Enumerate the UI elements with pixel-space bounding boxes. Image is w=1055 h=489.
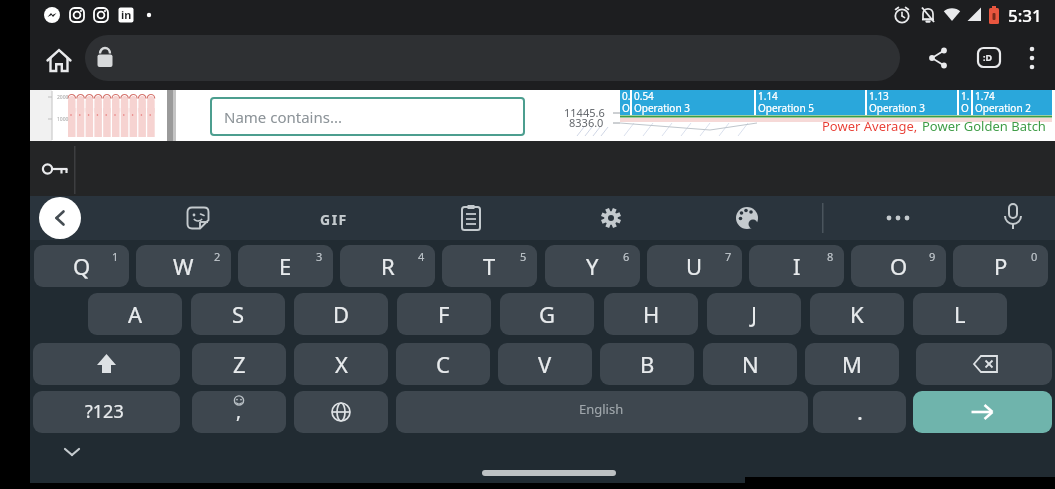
staticText: 8336.0: [569, 115, 604, 130]
staticText: 0.54: [634, 89, 654, 103]
button[interactable]: [1024, 44, 1040, 72]
staticText: Power Average,: [822, 117, 918, 135]
staticText: 5: [520, 249, 527, 264]
button[interactable]: M: [805, 343, 899, 385]
staticText: F: [438, 299, 450, 329]
button[interactable]: Q: [34, 245, 129, 287]
staticText: GIF: [320, 210, 348, 229]
button[interactable]: B: [600, 343, 694, 385]
button[interactable]: Name contains...: [210, 97, 525, 136]
staticText: 8: [827, 249, 834, 264]
staticText: P: [994, 251, 1008, 281]
button[interactable]: U: [647, 245, 742, 287]
staticText: Operation 3: [634, 101, 690, 115]
staticText: X: [335, 349, 348, 379]
button[interactable]: A: [88, 293, 182, 335]
staticText: O: [890, 251, 908, 281]
staticText: ?123: [85, 399, 124, 424]
button[interactable]: Z: [192, 343, 286, 385]
staticText: T: [483, 251, 496, 281]
staticText: H: [643, 299, 660, 329]
staticText: O: [622, 101, 630, 115]
staticText: G: [539, 299, 556, 329]
button[interactable]: [926, 46, 950, 70]
button[interactable]: [458, 204, 484, 232]
button[interactable]: [41, 156, 71, 184]
staticText: Z: [233, 349, 246, 379]
button[interactable]: R: [340, 245, 435, 287]
staticText: 1.: [961, 89, 970, 103]
staticText: 4: [418, 249, 425, 264]
staticText: V: [538, 349, 552, 379]
staticText: Q: [73, 251, 91, 281]
staticText: 1.14: [758, 89, 778, 103]
staticText: Y: [586, 251, 599, 281]
button[interactable]: [33, 391, 180, 433]
button[interactable]: X: [294, 343, 388, 385]
button[interactable]: [598, 205, 624, 231]
button[interactable]: [1001, 202, 1025, 234]
button[interactable]: T: [442, 245, 537, 287]
button[interactable]: N: [703, 343, 797, 385]
button[interactable]: [396, 391, 808, 433]
staticText: E: [279, 251, 292, 281]
button[interactable]: [85, 35, 900, 81]
button[interactable]: [62, 444, 82, 460]
button[interactable]: F: [397, 293, 491, 335]
staticText: 5:31: [1008, 4, 1042, 27]
button[interactable]: [192, 391, 286, 433]
staticText: 9: [929, 249, 936, 264]
staticText: N: [742, 349, 759, 379]
button[interactable]: [916, 343, 1052, 385]
staticText: Operation 3: [869, 101, 925, 115]
button[interactable]: [733, 204, 761, 232]
button[interactable]: [33, 343, 180, 385]
button[interactable]: Y: [545, 245, 640, 287]
button[interactable]: D: [294, 293, 388, 335]
button[interactable]: :D: [976, 47, 1002, 69]
staticText: 0: [1031, 249, 1038, 264]
staticText: C: [436, 349, 450, 379]
staticText: .: [857, 396, 863, 426]
staticText: Power Golden Batch: [922, 117, 1046, 135]
button[interactable]: [186, 206, 210, 230]
staticText: D: [333, 299, 350, 329]
button[interactable]: [913, 391, 1052, 433]
button[interactable]: [884, 210, 914, 226]
staticText: 7: [725, 249, 732, 264]
button[interactable]: S: [191, 293, 285, 335]
staticText: O: [961, 101, 969, 115]
button[interactable]: E: [238, 245, 333, 287]
staticText: 0.: [622, 89, 631, 103]
button[interactable]: W: [136, 245, 231, 287]
button[interactable]: G: [500, 293, 594, 335]
staticText: ,: [236, 398, 242, 424]
staticText: W: [173, 251, 194, 281]
button[interactable]: L: [913, 293, 1007, 335]
staticText: A: [128, 299, 143, 329]
staticText: B: [640, 349, 655, 379]
button[interactable]: O: [851, 245, 946, 287]
button[interactable]: [813, 391, 906, 433]
button[interactable]: [294, 391, 388, 433]
staticText: 1.74: [975, 89, 995, 103]
button[interactable]: V: [498, 343, 592, 385]
staticText: J: [751, 299, 758, 329]
staticText: Operation 5: [758, 101, 814, 115]
button[interactable]: C: [396, 343, 490, 385]
staticText: English: [579, 400, 624, 418]
button[interactable]: K: [810, 293, 904, 335]
staticText: 3: [316, 249, 323, 264]
button[interactable]: [38, 196, 82, 240]
staticText: Operation 2: [975, 101, 1031, 115]
staticText: 1000: [57, 116, 69, 123]
staticText: M: [842, 349, 862, 379]
staticText: 11445.6: [564, 105, 605, 120]
button[interactable]: J: [707, 293, 801, 335]
button[interactable]: H: [604, 293, 698, 335]
staticText: 1: [112, 249, 119, 264]
button[interactable]: [44, 46, 74, 76]
button[interactable]: I: [749, 245, 844, 287]
staticText: 1.13: [869, 89, 889, 103]
button[interactable]: P: [953, 245, 1048, 287]
